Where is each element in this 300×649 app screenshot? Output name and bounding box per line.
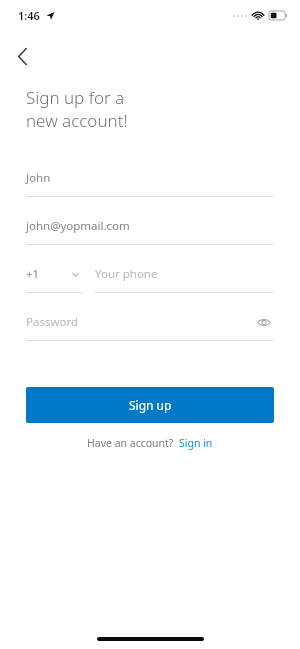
staticText: John [26, 170, 51, 186]
staticText: Sign in [179, 436, 213, 450]
button[interactable]: Password [26, 311, 274, 333]
staticText: +1 [26, 266, 40, 282]
button[interactable]: Your phone [95, 263, 274, 293]
button[interactable]: John [26, 167, 274, 197]
staticText: john@yopmail.com [26, 218, 130, 234]
button[interactable]: Sign in [179, 436, 213, 450]
button[interactable]: john@yopmail.com [26, 215, 274, 245]
button[interactable]: +1 [26, 263, 83, 293]
button[interactable]: Sign up [26, 387, 274, 423]
staticText: Password [26, 314, 79, 330]
button[interactable]: Show password [254, 312, 274, 332]
staticText: Sign up [129, 397, 172, 413]
staticText: Your phone [95, 266, 158, 282]
staticText: Have an account? [87, 436, 179, 450]
staticText: Sign up for a new account! [26, 86, 128, 132]
staticText: 1:46 [18, 8, 40, 23]
button[interactable]: Back [5, 39, 39, 73]
